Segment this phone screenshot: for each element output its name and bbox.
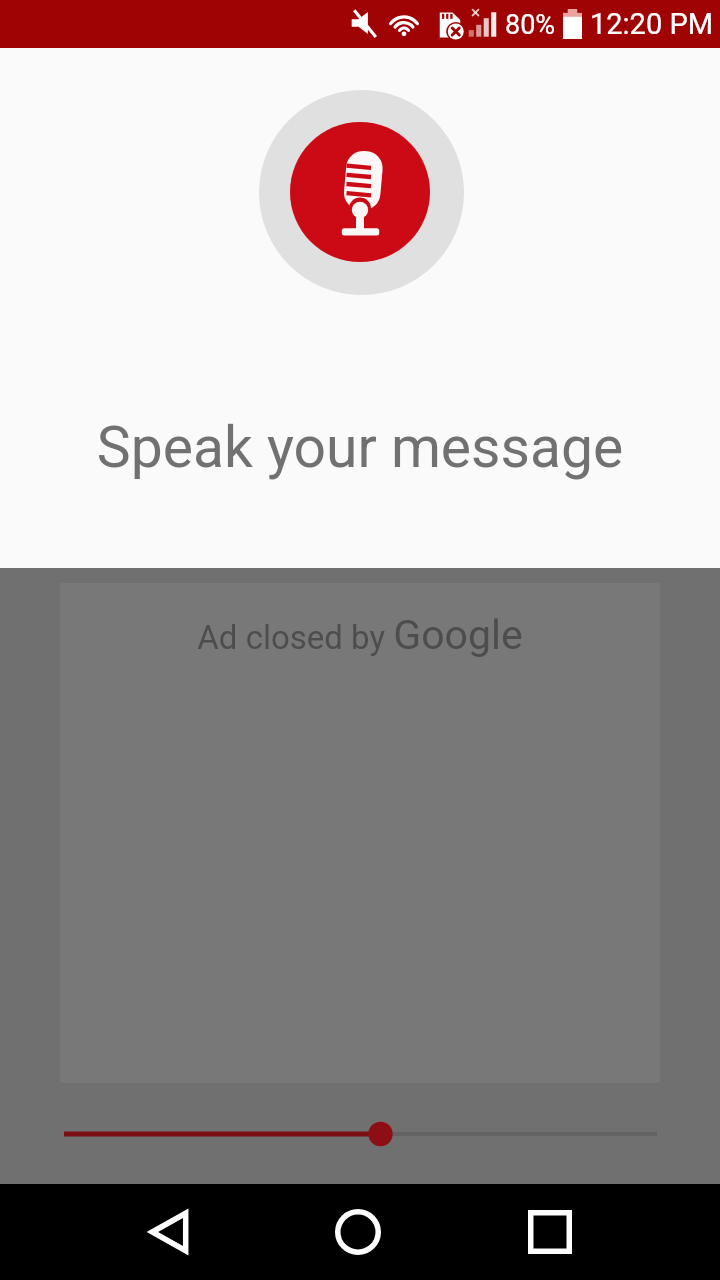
button[interactable]: Back [121,1184,217,1280]
button[interactable]: Home [310,1184,406,1280]
staticText: 12:20 PM [590,7,714,41]
button[interactable]: Record voice message [259,90,464,295]
staticText: 80% [505,9,556,41]
button[interactable]: Progress slider [0,1114,720,1154]
staticText: Ad closed by Google [60,611,660,659]
staticText: Speak your message [0,414,720,481]
button[interactable]: Recent apps [502,1184,598,1280]
